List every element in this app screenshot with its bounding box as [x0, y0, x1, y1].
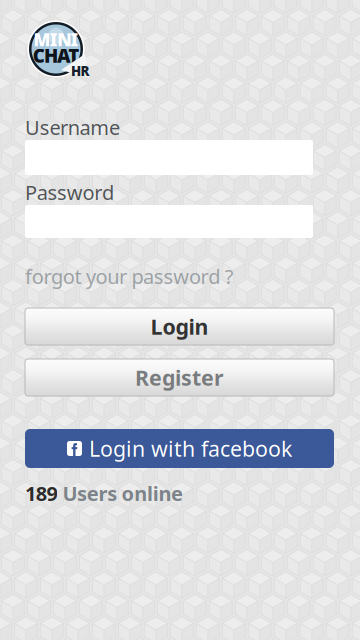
staticText: CHAT	[33, 43, 79, 68]
staticText: Register	[135, 363, 224, 392]
staticText: Password	[25, 179, 114, 206]
button[interactable]: Login	[25, 308, 334, 345]
staticText: MINI	[33, 28, 79, 51]
button[interactable]: forgot your password ?	[25, 263, 234, 290]
button[interactable]: Login with facebook	[25, 429, 334, 468]
staticText: HR	[71, 62, 89, 80]
staticText: 189	[25, 480, 57, 507]
staticText: Login with facebook	[89, 434, 292, 463]
button[interactable]: Register	[25, 359, 334, 396]
staticText: forgot your password ?	[25, 263, 234, 290]
staticText: Login	[150, 312, 208, 341]
staticText: Users online	[62, 480, 183, 507]
staticText: Username	[25, 114, 120, 141]
